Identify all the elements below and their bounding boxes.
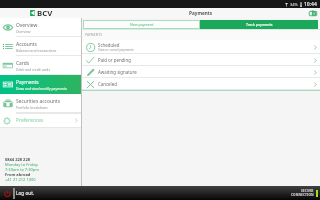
staticText: From abroad (5, 172, 31, 177)
staticText: BCV (37, 8, 53, 18)
staticText: Cards (16, 60, 30, 67)
staticText: SECURE (301, 189, 314, 193)
staticText: Track payments (246, 22, 273, 27)
staticText: Portfolio breakdown (16, 105, 48, 109)
staticText: 10:44 (304, 1, 317, 8)
staticText: Securities accounts (16, 98, 61, 105)
staticText: Balances and transactions (16, 48, 57, 52)
staticText: Awaiting signature (98, 69, 137, 75)
staticText: Log out. (16, 190, 35, 196)
button[interactable]: Accounts (0, 37, 81, 56)
staticText: Payments (16, 79, 39, 86)
button[interactable]: New payment (83, 20, 200, 29)
button[interactable]: Paid or pending (82, 54, 320, 66)
button[interactable]: Scheduled (82, 40, 320, 54)
staticText: Paid or pending (98, 57, 131, 63)
staticText: Draw and view/modify payments (16, 86, 67, 90)
button[interactable]: Cards (0, 56, 81, 75)
staticText: Overview (16, 22, 38, 29)
button[interactable]: Log out. (4, 186, 35, 200)
button[interactable]: Track payments (200, 20, 318, 29)
button[interactable]: Awaiting signature (82, 66, 320, 78)
button[interactable]: Overview (0, 18, 81, 37)
staticText: PAYMENTS (85, 33, 103, 37)
staticText: Monday to Friday (5, 162, 38, 167)
staticText: 0844 228 228 (5, 157, 30, 162)
staticText: CONNECTION (291, 193, 314, 197)
button[interactable]: Contact us (309, 10, 317, 17)
staticText: +41 21 212 1000 (5, 177, 36, 182)
staticText: Debit and credit cards (16, 67, 50, 71)
button[interactable]: Payments (0, 75, 81, 94)
staticText: 34% (290, 2, 298, 7)
staticText: View or cancel payments (98, 48, 134, 52)
button[interactable]: Securities accounts (0, 94, 81, 113)
staticText: Canceled (98, 81, 117, 87)
staticText: Scheduled (98, 42, 120, 48)
staticText: Preferences (16, 117, 44, 124)
button[interactable]: Preferences (0, 113, 81, 128)
button[interactable]: Canceled (82, 78, 320, 90)
staticText: 7:30am to 7:30pm (5, 167, 39, 172)
staticText: New payment (130, 22, 154, 27)
staticText: Overview (16, 29, 31, 33)
staticText: Accounts (16, 41, 37, 48)
staticText: Payments (189, 10, 213, 16)
